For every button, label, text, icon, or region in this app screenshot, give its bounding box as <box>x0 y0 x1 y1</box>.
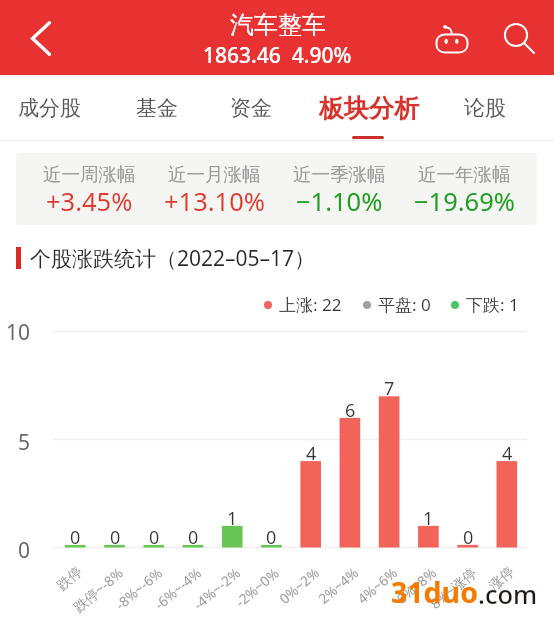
staticText: 0%~2% <box>275 563 323 608</box>
button[interactable]: 板块分析 <box>313 83 425 133</box>
staticText: 论股 <box>464 95 506 121</box>
staticText: 1 <box>227 506 238 531</box>
staticText: 0 <box>463 525 474 550</box>
staticText: -8%~-6% <box>111 563 166 614</box>
staticText: 平盘: 0 <box>378 293 431 316</box>
staticText: 近一月涨幅 <box>168 163 261 186</box>
staticText: 6%~8% <box>392 563 440 608</box>
button[interactable]: 基金 <box>101 83 213 133</box>
staticText: -4%~-2% <box>189 563 244 614</box>
staticText: 跌停 <box>54 563 86 594</box>
staticText: 8%~涨停 <box>426 563 480 613</box>
staticText: 4 <box>502 441 513 466</box>
staticText: 下跌: 1 <box>466 293 519 316</box>
staticText: 基金 <box>136 95 178 121</box>
staticText: 0 <box>266 525 277 550</box>
staticText: 近一年涨幅 <box>418 163 511 186</box>
staticText: +13.10% <box>164 184 265 219</box>
staticText: 0 <box>149 525 160 550</box>
staticText: 板块分析 <box>319 93 419 124</box>
staticText: .com <box>478 577 538 612</box>
staticText: 10 <box>6 318 31 347</box>
staticText: −1.10% <box>296 184 383 219</box>
staticText: -2%~0% <box>231 563 283 611</box>
staticText: -6%~-4% <box>150 563 205 614</box>
staticText: −19.69% <box>414 184 515 219</box>
button[interactable]: Search <box>489 11 542 64</box>
staticText: 上涨: 22 <box>279 293 342 316</box>
button[interactable]: 资金 <box>195 83 307 133</box>
staticText: 0 <box>188 525 199 550</box>
staticText: 汽车整车 <box>230 10 326 40</box>
staticText: 0 <box>70 525 81 550</box>
staticText: 4 <box>306 441 317 466</box>
button[interactable]: Assistant <box>425 11 478 64</box>
staticText: 5 <box>18 428 31 457</box>
staticText: 7 <box>384 376 395 401</box>
staticText: 近一季涨幅 <box>293 163 386 186</box>
staticText: 涨停 <box>486 563 518 594</box>
staticText: 0 <box>18 536 31 565</box>
button[interactable]: 论股 <box>429 83 541 133</box>
staticText: +3.45% <box>46 184 133 219</box>
staticText: 2%~4% <box>314 563 362 608</box>
button[interactable]: Back <box>9 6 73 70</box>
staticText: 31duo <box>391 573 478 612</box>
staticText: 资金 <box>230 95 272 121</box>
staticText: 1 <box>423 506 434 531</box>
staticText: 成分股 <box>18 95 81 121</box>
staticText: 近一周涨幅 <box>43 163 136 186</box>
staticText: 6 <box>345 398 356 423</box>
button[interactable]: 成分股 <box>0 83 105 133</box>
staticText: 1863.46 4.90% <box>203 41 352 70</box>
staticText: 个股涨跌统计（2022–05–17） <box>30 244 316 273</box>
staticText: 4%~6% <box>353 563 401 608</box>
staticText: 跌停~-8% <box>69 563 127 616</box>
staticText: 0 <box>110 525 121 550</box>
